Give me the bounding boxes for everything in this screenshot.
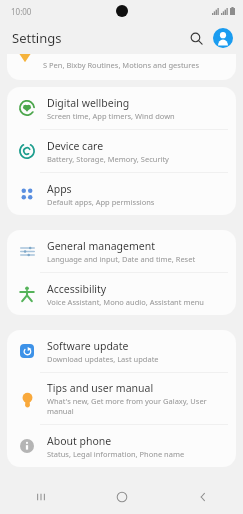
button[interactable]: Search [183,25,209,51]
staticText: Default apps, App permissions [47,197,155,207]
button[interactable]: Apps [7,173,236,215]
staticText: Apps [47,182,72,196]
staticText: Device care [47,139,104,153]
button[interactable]: Recent apps [0,480,81,514]
button[interactable]: Device care [7,130,236,172]
staticText: About phone [47,434,112,448]
button[interactable]: Home [81,480,162,514]
staticText: S Pen, Bixby Routines, Motions and gestu… [43,60,199,70]
staticText: General management [47,239,155,253]
button[interactable]: S Pen, Bixby Routines, Motions and gestu… [7,54,236,80]
staticText: Digital wellbeing [47,96,130,110]
button[interactable]: About phone [7,425,236,467]
button[interactable]: Tips and user manual [7,373,236,424]
staticText: Language and input, Date and time, Reset [47,254,196,264]
staticText: Download updates, Last update [47,354,159,364]
staticText: Accessibility [47,282,107,296]
staticText: Voice Assistant, Mono audio, Assistant m… [47,297,204,307]
button[interactable]: Back [162,480,243,514]
button[interactable]: Software update [7,330,236,372]
button[interactable]: Accessibility [7,273,236,315]
staticText: Software update [47,339,129,353]
button[interactable]: Digital wellbeing [7,87,236,129]
staticText: Battery, Storage, Memory, Security [47,154,169,164]
staticText: 10:00 [11,6,32,17]
staticText: What's new, Get more from your Galaxy, U… [47,396,226,416]
staticText: Status, Legal information, Phone name [47,449,185,459]
staticText: Screen time, App timers, Wind down [47,111,175,121]
button[interactable]: General management [7,230,236,272]
staticText: Settings [12,29,62,47]
staticText: Tips and user manual [47,381,154,395]
button[interactable]: Account [213,28,233,48]
